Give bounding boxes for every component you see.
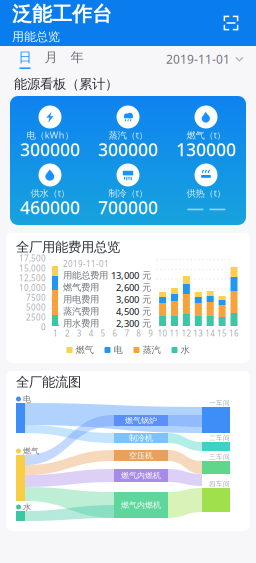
button[interactable]: 供热（t） [167,163,245,215]
staticText: 2019-11-01 [63,259,109,269]
staticText: 2,600 [116,281,139,294]
staticText: 元 [139,270,151,281]
staticText: 燃气内燃机 [121,471,161,480]
staticText: 电（kWh） [26,129,73,141]
staticText: 300000 [20,138,80,161]
staticText: 7 [124,328,129,339]
staticText: 15,000 [19,263,46,274]
staticText: 130000 [176,138,236,161]
staticText: 2500 [26,312,46,323]
staticText: 蒸汽费用 [63,306,99,317]
staticText: 泛能工作台 [12,2,112,26]
staticText: 2019-11-01 [166,51,230,67]
staticText: 460000 [20,196,80,219]
staticText: 用能总费用 [63,270,108,281]
staticText: 6 [112,328,117,339]
staticText: 元 [139,318,151,329]
staticText: 13,000 [111,269,139,282]
staticText: 3,600 [116,293,139,306]
staticText: 二车间 [209,434,230,442]
staticText: 年 [70,49,83,65]
staticText: 月 [44,49,57,65]
staticText: 15 [217,328,227,339]
staticText: 14 [205,328,215,339]
staticText: 5 [101,328,106,339]
button[interactable]: 制冷（t） [89,163,167,215]
button[interactable]: 电（kWh） [11,105,89,157]
staticText: 全厂用能费用总览 [16,239,120,255]
button[interactable]: 年 [64,47,90,71]
staticText: 供热（t） [186,187,225,199]
staticText: 9 [148,328,153,339]
staticText: 11 [169,328,179,339]
staticText: 全厂能流图 [16,374,81,390]
staticText: 制冷机 [129,433,153,443]
staticText: 1 [53,328,58,339]
staticText: 蒸汽 [142,344,160,356]
staticText: 17,500 [19,253,46,264]
staticText: 12 [181,328,191,339]
staticText: 16 [229,328,239,339]
staticText: 燃气 [23,446,39,456]
staticText: 用能总览 [12,29,60,44]
staticText: 元 [139,306,151,317]
staticText: 300000 [98,138,158,161]
staticText: 13 [193,328,203,339]
staticText: 燃气内燃机 [121,500,161,510]
staticText: 4 [89,328,94,339]
staticText: — — [186,196,225,219]
staticText: 水 [23,502,31,512]
staticText: 用电费用 [63,294,99,305]
staticText: 燃气费用 [63,282,99,293]
staticText: 10 [158,328,168,339]
button[interactable]: 燃气（t） [167,105,245,157]
staticText: 8 [136,328,141,339]
staticText: 日 [18,49,31,65]
staticText: 元 [139,294,151,305]
staticText: 700000 [98,196,158,219]
staticText: 空压机 [129,451,153,460]
staticText: 用水费用 [63,318,99,329]
staticText: 燃气（t） [186,129,225,141]
staticText: 2 [65,328,70,339]
staticText: 10,000 [19,283,46,293]
staticText: 燃气 [75,344,93,356]
staticText: 电 [113,344,122,356]
staticText: 元 [139,282,151,293]
staticText: 能源看板（累计） [14,76,118,92]
staticText: 4,500 [116,305,139,318]
button[interactable]: 供水（t） [11,163,89,215]
button[interactable]: 2019-11-01 [166,47,244,71]
staticText: 四车间 [209,480,230,488]
staticText: 供水（t） [30,187,69,199]
staticText: 燃气锅炉 [125,416,157,425]
staticText: 一车间 [209,399,230,407]
button[interactable]: 日 [12,47,38,71]
staticText: 12,500 [19,273,46,283]
button[interactable]: 扫一扫 [218,10,244,36]
staticText: 电 [23,394,31,404]
staticText: 水 [180,344,189,356]
staticText: 5000 [26,302,46,313]
staticText: 三车间 [209,453,230,461]
button[interactable]: 月 [38,47,64,71]
staticText: 蒸汽（t） [108,129,147,141]
staticText: 0 [41,322,46,332]
staticText: 7500 [26,292,46,303]
button[interactable]: 蒸汽（t） [89,105,167,157]
staticText: 3 [77,328,82,339]
staticText: 2,300 [116,317,139,330]
staticText: 制冷（t） [108,187,147,199]
